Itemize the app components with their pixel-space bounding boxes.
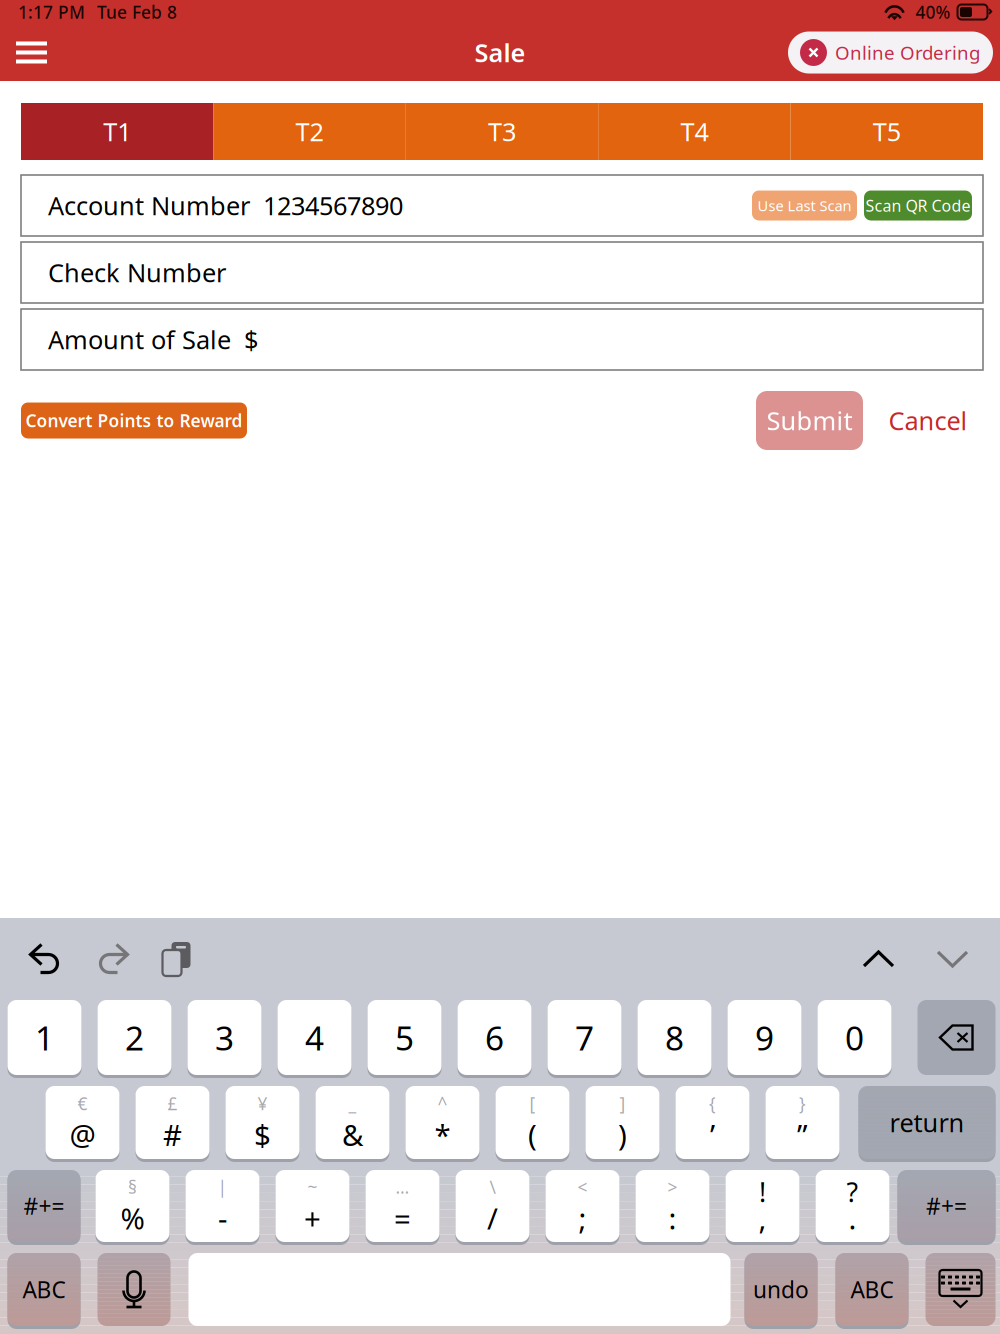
button[interactable]: € (45, 1086, 119, 1159)
button[interactable]: { (675, 1086, 749, 1159)
staticText: ; (578, 1198, 586, 1237)
button[interactable]: 3 (187, 1000, 261, 1075)
staticText: * (434, 1115, 450, 1154)
button[interactable]: } (765, 1086, 839, 1159)
staticText: / (487, 1198, 498, 1237)
button[interactable]: 6 (457, 1000, 531, 1075)
staticText: ! (759, 1174, 766, 1210)
button[interactable]: Redo (91, 937, 136, 980)
staticText: 7 (575, 1015, 594, 1060)
button[interactable]: 2 (97, 1000, 171, 1075)
staticText: ABC (22, 1274, 65, 1304)
staticText: $ (254, 1115, 271, 1154)
button[interactable]: ¥ (225, 1086, 299, 1159)
button[interactable]: return (858, 1086, 995, 1159)
button[interactable]: ABC (835, 1253, 908, 1326)
staticText: T4 (680, 115, 708, 148)
button[interactable]: > (635, 1170, 709, 1242)
button[interactable]: T2 (213, 103, 406, 160)
button[interactable]: 4 (277, 1000, 351, 1075)
staticText: ’ (710, 1115, 715, 1154)
button[interactable]: 7 (547, 1000, 621, 1075)
staticText: 5 (395, 1015, 414, 1060)
button[interactable]: T5 (791, 103, 983, 160)
staticText: Tue Feb 8 (97, 0, 177, 23)
staticText: ( (528, 1115, 537, 1154)
button[interactable]: #+= (7, 1170, 80, 1242)
button[interactable]: £ (135, 1086, 209, 1159)
button[interactable]: Paste (156, 936, 196, 982)
staticText: Scan QR Code (865, 195, 970, 216)
button[interactable]: ABC (7, 1253, 80, 1326)
button[interactable]: Use Last Scan (752, 190, 857, 220)
button[interactable]: #+= (897, 1170, 995, 1242)
staticText: Convert Points to Reward (25, 409, 242, 432)
button[interactable]: < (545, 1170, 619, 1242)
staticText: Submit (766, 404, 852, 437)
staticText: $ (244, 323, 258, 356)
button[interactable]: Previous field (854, 942, 902, 975)
button[interactable]: Online Ordering (788, 31, 993, 73)
button[interactable]: ? (815, 1170, 889, 1242)
staticText: - (218, 1198, 227, 1237)
staticText: Online Ordering (835, 40, 980, 65)
button[interactable]: T4 (598, 103, 791, 160)
staticText: Account Number (48, 189, 250, 222)
staticText: 1:17 PM (18, 0, 85, 23)
button[interactable]: ] (585, 1086, 659, 1159)
button[interactable]: | (185, 1170, 259, 1242)
button[interactable]: _ (315, 1086, 389, 1159)
staticText: undo (753, 1274, 809, 1304)
staticText: : (668, 1198, 676, 1237)
staticText: 2 (125, 1015, 144, 1060)
staticText: return (889, 1106, 964, 1139)
staticText: #+= (23, 1191, 64, 1221)
button[interactable]: Undo (21, 937, 66, 980)
staticText: T3 (488, 115, 516, 148)
staticText: # (163, 1115, 182, 1154)
button[interactable]: [ (495, 1086, 569, 1159)
button[interactable]: 8 (637, 1000, 711, 1075)
button[interactable]: T1 (21, 103, 213, 160)
button[interactable]: 0 (817, 1000, 891, 1075)
button[interactable]: ~ (275, 1170, 349, 1242)
staticText: , (758, 1198, 766, 1237)
button[interactable]: … (365, 1170, 439, 1242)
button[interactable]: Scan QR Code (864, 190, 972, 220)
button[interactable]: Menu (0, 31, 63, 73)
staticText: = (394, 1198, 411, 1237)
staticText: Cancel (888, 404, 967, 437)
staticText: Check Number (48, 256, 226, 289)
button[interactable]: ! (725, 1170, 799, 1242)
staticText: 9 (755, 1015, 774, 1060)
button[interactable]: undo (744, 1253, 817, 1326)
button[interactable]: \ (455, 1170, 529, 1242)
staticText: ] (619, 1092, 625, 1115)
button[interactable]: ^ (405, 1086, 479, 1159)
button[interactable]: Cancel (887, 391, 969, 450)
staticText: ) (618, 1115, 627, 1154)
staticText: § (128, 1175, 137, 1198)
staticText: & (342, 1115, 363, 1154)
staticText: ^ (437, 1092, 447, 1115)
button[interactable]: Dictation (97, 1253, 170, 1326)
staticText: T5 (873, 115, 901, 148)
staticText: 40% (915, 0, 950, 23)
staticText: . (848, 1198, 856, 1237)
button[interactable]: 9 (727, 1000, 801, 1075)
button[interactable]: § (95, 1170, 169, 1242)
button[interactable]: Submit (756, 391, 863, 450)
staticText: 4 (305, 1015, 324, 1060)
button[interactable]: Convert Points to Reward (21, 402, 247, 438)
staticText: #+= (926, 1191, 967, 1221)
staticText: < (577, 1175, 587, 1198)
button[interactable]: 5 (367, 1000, 441, 1075)
button[interactable]: Hide keyboard (925, 1253, 995, 1326)
staticText: 1 (35, 1015, 54, 1060)
button[interactable]: T3 (406, 103, 598, 160)
staticText: Amount of Sale (48, 323, 231, 356)
button[interactable]: Delete (917, 1000, 995, 1075)
button[interactable]: Next field (928, 942, 976, 975)
button[interactable]: 1 (7, 1000, 81, 1075)
